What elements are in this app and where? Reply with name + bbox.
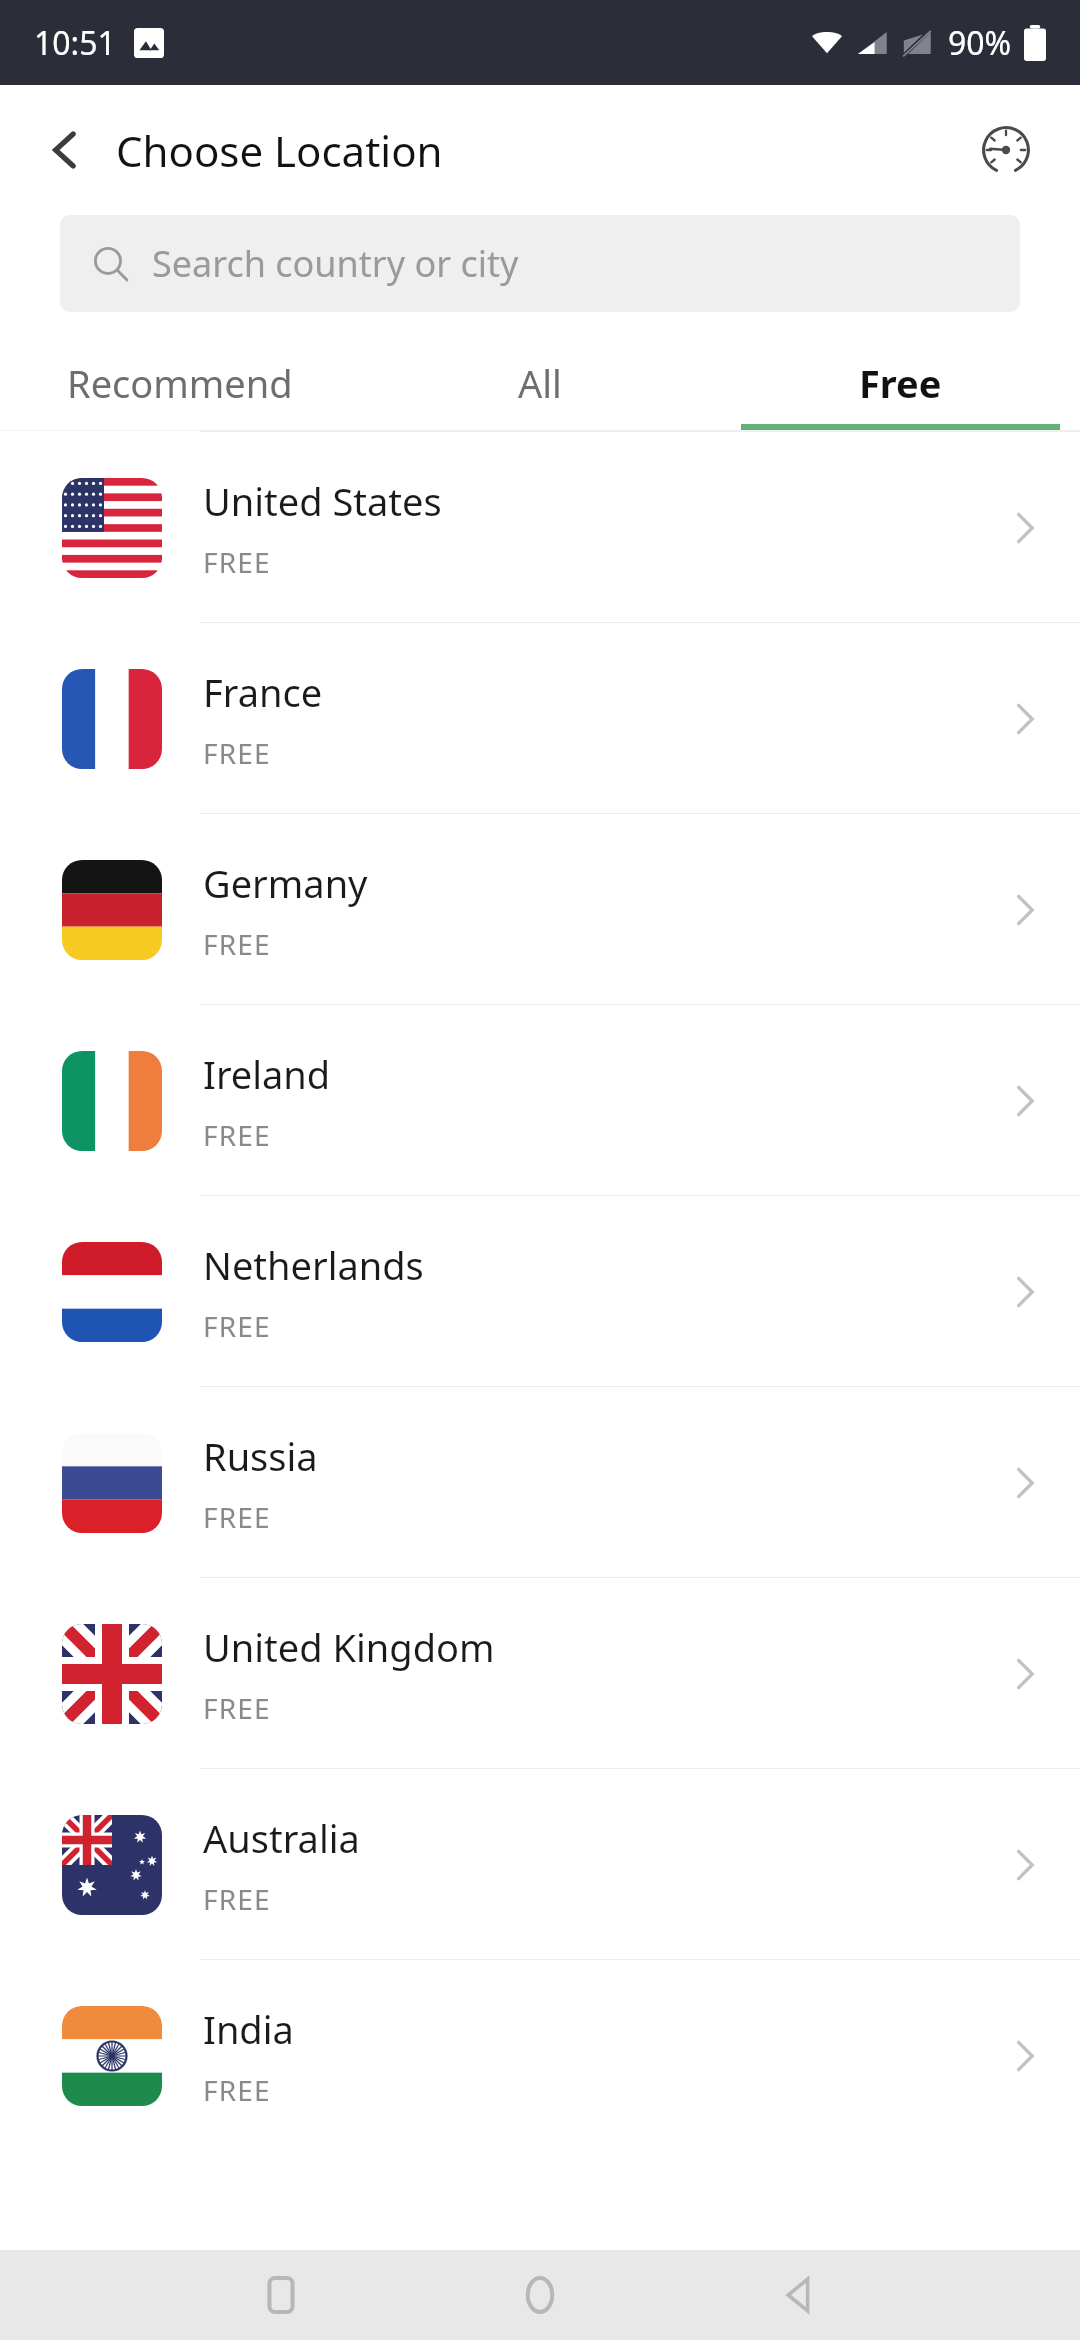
button[interactable]: Recommend (0, 342, 360, 424)
staticText: FREE (203, 1689, 271, 1727)
staticText: FREE (203, 1880, 271, 1918)
staticText: FREE (203, 1116, 271, 1154)
staticText: Australia (203, 1812, 360, 1864)
staticText: 10:51 (34, 21, 116, 65)
button[interactable]: Back (759, 2255, 839, 2335)
button[interactable]: India (0, 1960, 1080, 2151)
button[interactable]: Recents (241, 2255, 321, 2335)
staticText: France (203, 666, 323, 718)
button[interactable]: Russia (0, 1387, 1080, 1578)
staticText: 90% (948, 21, 1012, 65)
staticText: All (518, 357, 562, 409)
staticText: Free (859, 357, 942, 409)
button[interactable]: Speed test (966, 110, 1046, 190)
button[interactable]: Search country or city (60, 215, 1020, 312)
button[interactable]: Netherlands (0, 1196, 1080, 1387)
button[interactable]: Back (30, 114, 102, 186)
staticText: Germany (203, 857, 368, 909)
button[interactable]: United States (0, 432, 1080, 623)
staticText: FREE (203, 925, 271, 963)
staticText: FREE (203, 1307, 271, 1345)
staticText: United States (203, 475, 442, 527)
staticText: FREE (203, 734, 271, 772)
staticText: India (203, 2003, 294, 2055)
button[interactable]: United Kingdom (0, 1578, 1080, 1769)
button[interactable]: France (0, 623, 1080, 814)
staticText: Netherlands (203, 1239, 424, 1291)
staticText: United Kingdom (203, 1621, 495, 1673)
button[interactable]: Free (720, 342, 1080, 424)
staticText: Choose Location (116, 122, 443, 179)
button[interactable]: Ireland (0, 1005, 1080, 1196)
staticText: FREE (203, 1498, 271, 1536)
staticText: Russia (203, 1430, 318, 1482)
button[interactable]: Home (500, 2255, 580, 2335)
button[interactable]: Australia (0, 1769, 1080, 1960)
button[interactable]: All (360, 342, 720, 424)
staticText: Ireland (203, 1048, 331, 1100)
staticText: FREE (203, 2071, 271, 2109)
staticText: Search country or city (152, 239, 519, 288)
staticText: Recommend (67, 357, 293, 409)
button[interactable]: Germany (0, 814, 1080, 1005)
staticText: FREE (203, 543, 271, 581)
